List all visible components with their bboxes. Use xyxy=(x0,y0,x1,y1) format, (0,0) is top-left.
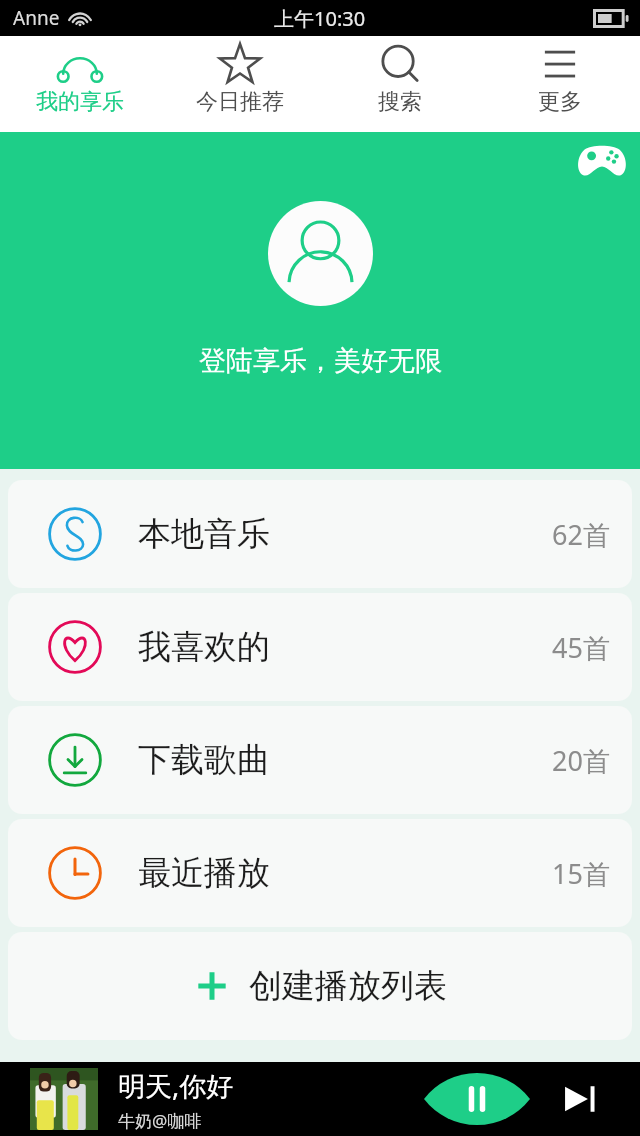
button[interactable]: Album art xyxy=(30,1068,98,1130)
staticText: 更多 xyxy=(538,88,582,116)
staticText: 下载歌曲 xyxy=(138,739,270,781)
button[interactable]: Pause xyxy=(424,1073,530,1125)
staticText: 本地音乐 xyxy=(138,513,270,555)
staticText: 15首 xyxy=(552,855,610,892)
button[interactable]: 本地音乐 xyxy=(8,480,632,588)
staticText: Anne xyxy=(13,5,60,31)
staticText: 62首 xyxy=(552,516,610,553)
button[interactable]: 我的享乐 xyxy=(0,36,160,132)
staticText: 上午10:30 xyxy=(274,5,366,32)
staticText: 我喜欢的 xyxy=(138,626,270,668)
staticText: 创建播放列表 xyxy=(249,965,447,1007)
staticText: 牛奶@咖啡 xyxy=(118,1109,202,1132)
staticText: 搜索 xyxy=(378,88,422,116)
staticText: 最近播放 xyxy=(138,852,270,894)
button[interactable]: 我喜欢的 xyxy=(8,593,632,701)
button[interactable]: Next xyxy=(558,1077,602,1121)
button[interactable]: 搜索 xyxy=(320,36,480,132)
staticText: 登陆享乐，美好无限 xyxy=(199,344,442,378)
button[interactable]: Avatar xyxy=(268,201,373,306)
button[interactable]: 今日推荐 xyxy=(160,36,320,132)
button[interactable]: 登陆享乐，美好无限 xyxy=(199,344,442,378)
button[interactable]: 最近播放 xyxy=(8,819,632,927)
button[interactable]: Games xyxy=(576,140,628,184)
button[interactable]: 创建播放列表 xyxy=(8,932,632,1040)
staticText: 我的享乐 xyxy=(36,88,124,116)
staticText: 20首 xyxy=(552,742,610,779)
button[interactable]: 更多 xyxy=(480,36,640,132)
button[interactable]: 下载歌曲 xyxy=(8,706,632,814)
staticText: 45首 xyxy=(552,629,610,666)
staticText: 今日推荐 xyxy=(196,88,284,116)
staticText: 明天,你好 xyxy=(118,1067,234,1104)
